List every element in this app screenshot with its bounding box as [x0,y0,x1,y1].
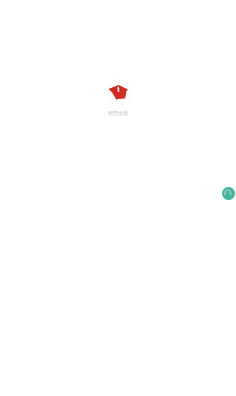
button[interactable]: Customer service [222,187,235,200]
staticText: 智慧金诺 [108,110,128,117]
